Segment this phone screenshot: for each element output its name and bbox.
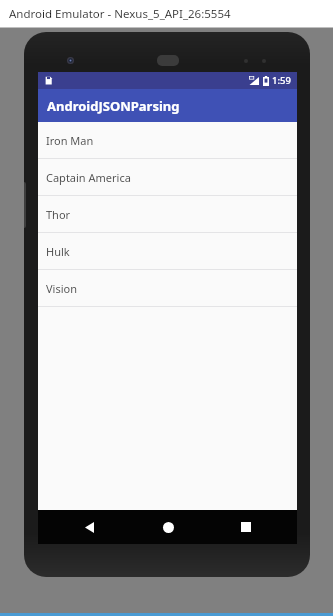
staticText: AndroidJSONParsing	[47, 97, 180, 115]
button[interactable]: Hulk	[38, 233, 297, 269]
staticText: Iron Man	[46, 133, 94, 148]
staticText: Vision	[46, 281, 77, 296]
button[interactable]: Vision	[38, 270, 297, 306]
staticText: Android Emulator - Nexus_5_API_26:5554	[9, 6, 231, 22]
button[interactable]: Home	[141, 510, 195, 544]
button[interactable]: Recent apps	[219, 510, 273, 544]
staticText: Hulk	[46, 244, 70, 259]
staticText: Thor	[46, 207, 71, 222]
button[interactable]: Captain America	[38, 159, 297, 195]
button[interactable]: AndroidJSONParsing	[38, 89, 297, 122]
staticText: Captain America	[46, 170, 131, 185]
staticText: 1:59	[272, 74, 291, 87]
button[interactable]: Iron Man	[38, 122, 297, 158]
button[interactable]: Thor	[38, 196, 297, 232]
button[interactable]: Back	[62, 510, 116, 544]
